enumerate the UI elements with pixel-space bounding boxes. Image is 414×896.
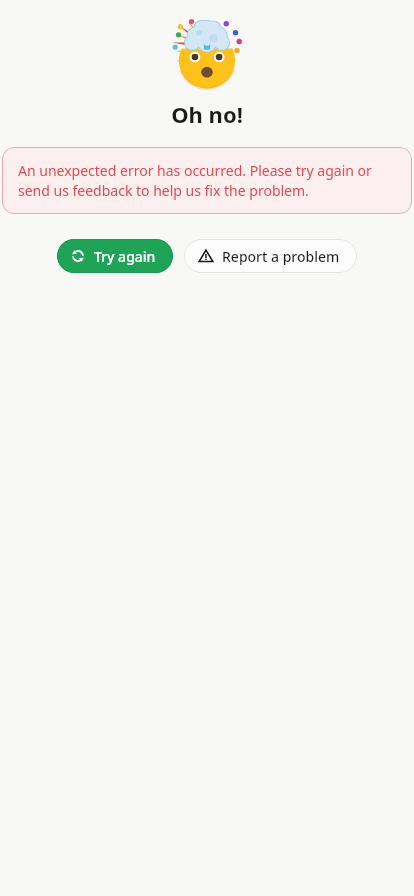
staticText: Try again (94, 247, 156, 266)
button[interactable]: Try again (57, 239, 173, 273)
button[interactable]: Report a problem (184, 239, 357, 273)
staticText: Oh no! (171, 99, 243, 129)
staticText: An unexpected error has occurred. Please… (18, 161, 396, 200)
staticText: Report a problem (222, 247, 340, 266)
